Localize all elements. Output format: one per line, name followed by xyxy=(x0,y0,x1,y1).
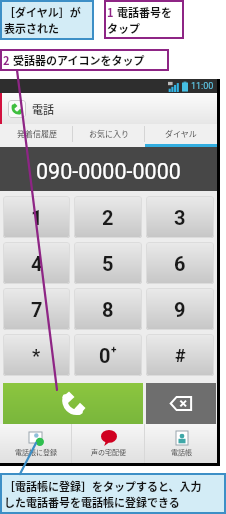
staticText: 表示された xyxy=(4,20,59,36)
button[interactable]: Phone xyxy=(8,100,26,118)
staticText: ダイヤル xyxy=(165,128,197,140)
staticText: お気に入り xyxy=(89,128,129,140)
button[interactable]: 0 xyxy=(74,334,142,376)
staticText: 電話番号を xyxy=(117,4,172,20)
staticText: 7 xyxy=(31,298,43,321)
button[interactable]: 電話帳 xyxy=(145,424,217,463)
button[interactable]: 6 xyxy=(146,242,214,284)
staticText: ［ダイヤル］が xyxy=(4,4,81,20)
staticText: 3 xyxy=(174,206,186,229)
staticText: タップ xyxy=(107,20,140,36)
staticText: 1 xyxy=(31,206,43,229)
staticText: 受話器のアイコンをタップ xyxy=(13,52,145,68)
staticText: 090-0000-0000 xyxy=(36,159,181,184)
button[interactable]: 3 xyxy=(146,196,214,238)
button[interactable]: 8 xyxy=(74,288,142,330)
staticText: * xyxy=(32,345,41,366)
button[interactable]: * xyxy=(3,334,70,376)
button[interactable]: 1 xyxy=(3,196,70,238)
button[interactable]: 9 xyxy=(146,288,214,330)
staticText: 1 xyxy=(107,4,114,20)
staticText: 2 xyxy=(102,206,114,229)
button[interactable]: 電話帳に登録 xyxy=(0,424,71,463)
button[interactable]: お気に入り xyxy=(73,124,145,144)
button[interactable]: 2 xyxy=(74,196,142,238)
staticText: 6 xyxy=(174,252,186,275)
button[interactable]: 5 xyxy=(74,242,142,284)
staticText: 8 xyxy=(102,298,114,321)
staticText: ［電話帳に登録］をタップすると、入力 xyxy=(4,478,202,494)
staticText: 0 xyxy=(99,344,111,367)
staticText: 発着信履歴 xyxy=(17,128,57,140)
staticText: 9 xyxy=(174,298,186,321)
staticText: 2 xyxy=(3,52,10,68)
staticText: 電話帳に登録 xyxy=(15,447,57,457)
staticText: # xyxy=(175,345,186,366)
staticText: 11:00 xyxy=(191,81,214,92)
button[interactable]: 発着信履歴 xyxy=(0,124,73,144)
button[interactable]: 声の宅配便 xyxy=(72,424,144,463)
staticText: + xyxy=(111,344,117,356)
staticText: 声の宅配便 xyxy=(91,447,126,457)
button[interactable]: Call xyxy=(3,383,143,424)
staticText: 電話帳 xyxy=(171,447,192,457)
staticText: 電話 xyxy=(32,101,54,117)
button[interactable]: # xyxy=(146,334,214,376)
staticText: 4 xyxy=(31,252,43,275)
button[interactable]: 7 xyxy=(3,288,70,330)
staticText: 5 xyxy=(102,252,114,275)
staticText: した電話番号を電話帳に登録できる xyxy=(4,494,180,510)
button[interactable]: ダイヤル xyxy=(145,124,217,144)
button[interactable]: 4 xyxy=(3,242,70,284)
button[interactable]: Delete xyxy=(146,383,216,424)
